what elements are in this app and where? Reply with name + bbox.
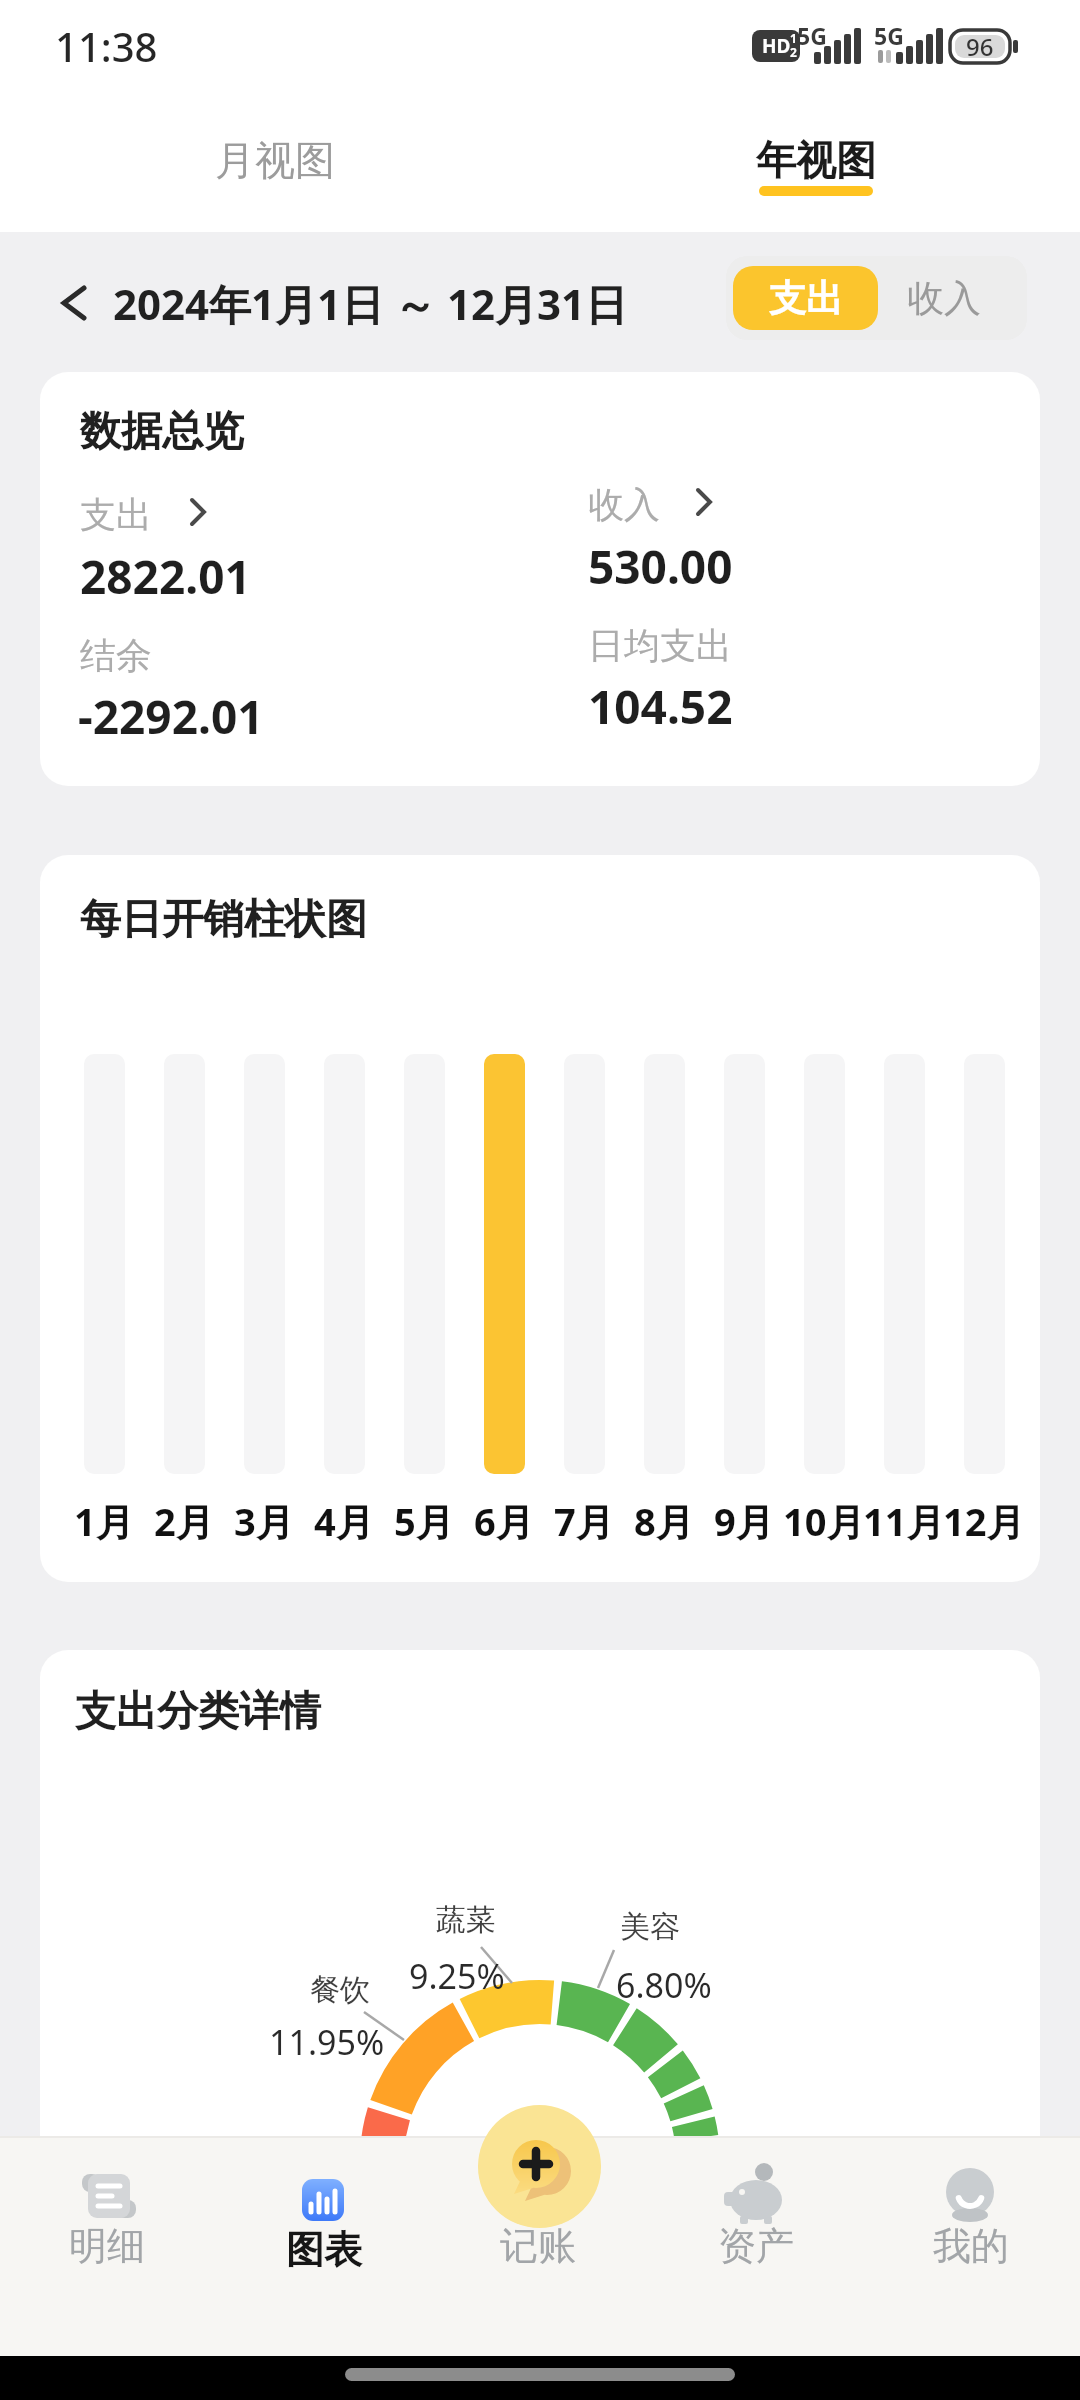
- staticText: 记账: [500, 2222, 576, 2270]
- staticText: 美容: [620, 1908, 680, 1946]
- staticText: 5G: [797, 20, 827, 51]
- staticText: HD: [762, 33, 791, 59]
- staticText: 530.00: [588, 535, 733, 598]
- staticText: 数据总览: [80, 406, 244, 458]
- staticText: 11.95%: [269, 2019, 385, 2065]
- button[interactable]: 图表: [74, 2200, 574, 2300]
- staticText: 4月: [314, 1495, 374, 1547]
- staticText: 10月: [783, 1495, 865, 1547]
- button[interactable]: 支出: [733, 266, 878, 330]
- staticText: 6月: [474, 1495, 534, 1547]
- button[interactable]: 记账: [288, 2196, 788, 2296]
- button[interactable]: [478, 2105, 601, 2228]
- staticText: 7月: [554, 1495, 614, 1547]
- staticText: 年视图: [756, 135, 876, 185]
- staticText: 支出: [769, 275, 843, 322]
- staticText: 12月: [943, 1495, 1025, 1547]
- staticText: 收入: [588, 482, 660, 527]
- staticText: 5G: [874, 20, 904, 51]
- staticText: 资产: [718, 2222, 794, 2270]
- staticText: 96: [966, 30, 994, 63]
- staticText: 2月: [154, 1495, 214, 1547]
- staticText: 2822.01: [80, 545, 251, 608]
- staticText: 3月: [234, 1495, 294, 1547]
- staticText: 9.25%: [409, 1953, 505, 1999]
- staticText: 收入: [907, 275, 981, 322]
- button[interactable]: 收入: [870, 266, 1018, 330]
- staticText: 日均支出: [588, 623, 732, 668]
- staticText: 2024年1月1日 ～ 12月31日: [113, 275, 628, 332]
- staticText: 支出分类详情: [75, 1686, 321, 1738]
- staticText: 5月: [394, 1495, 454, 1547]
- staticText: 我的: [933, 2222, 1009, 2270]
- staticText: 蔬菜: [436, 1901, 496, 1939]
- staticText: 8月: [634, 1495, 694, 1547]
- staticText: 11月: [863, 1495, 945, 1547]
- button[interactable]: 月视图: [25, 110, 525, 210]
- staticText: 每日开销柱状图: [80, 894, 367, 946]
- button[interactable]: [570, 470, 970, 600]
- staticText: 支出: [80, 492, 152, 537]
- staticText: 图表: [286, 2226, 362, 2274]
- staticText: 明细: [69, 2222, 145, 2270]
- button[interactable]: 年视图: [566, 110, 1066, 210]
- staticText: -2292.01: [78, 685, 264, 748]
- staticText: 2: [790, 44, 797, 60]
- button[interactable]: [50, 270, 100, 334]
- staticText: 1: [790, 30, 797, 46]
- staticText: 月视图: [215, 135, 335, 185]
- staticText: 11:38: [55, 19, 158, 73]
- staticText: 104.52: [588, 675, 733, 738]
- staticText: 结余: [80, 633, 152, 678]
- staticText: 餐饮: [310, 1971, 370, 2009]
- staticText: 9月: [714, 1495, 774, 1547]
- staticText: 1月: [74, 1495, 134, 1547]
- button[interactable]: 明细: [0, 2196, 357, 2296]
- button[interactable]: 我的: [721, 2196, 1080, 2296]
- staticText: 6.80%: [616, 1962, 712, 2008]
- button[interactable]: [60, 480, 460, 610]
- button[interactable]: 资产: [506, 2196, 1006, 2296]
